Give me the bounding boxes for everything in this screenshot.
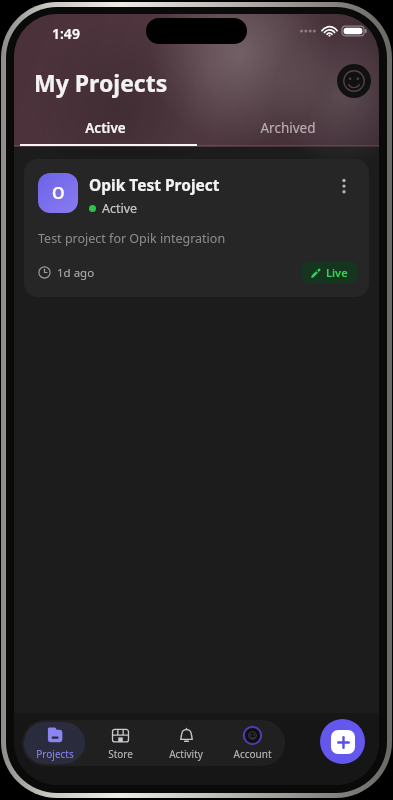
button[interactable]: Store — [89, 722, 151, 764]
staticText: 1d ago — [57, 265, 95, 281]
staticText: Active — [85, 119, 126, 137]
staticText: Projects — [36, 747, 74, 761]
button[interactable]: Profile — [337, 64, 371, 98]
button[interactable]: Live — [302, 261, 357, 284]
staticText: Live — [326, 265, 348, 280]
staticText: Account — [233, 747, 272, 761]
button[interactable]: More options — [331, 173, 357, 199]
button[interactable]: Add project — [320, 719, 365, 764]
button[interactable]: Activity — [155, 722, 217, 764]
button[interactable]: O — [24, 159, 369, 297]
staticText: Active — [102, 200, 138, 217]
button[interactable]: Archived — [196, 111, 379, 145]
staticText: Test project for Opik integration — [38, 230, 226, 247]
button[interactable]: Projects — [24, 722, 85, 764]
staticText: Archived — [260, 119, 316, 137]
staticText: 1:49 — [52, 24, 80, 43]
staticText: Opik Test Project — [89, 174, 220, 195]
button[interactable]: Account — [221, 722, 283, 764]
button[interactable]: Active — [14, 111, 196, 145]
staticText: Activity — [169, 747, 203, 761]
staticText: My Projects — [34, 67, 168, 98]
staticText: Store — [108, 747, 133, 761]
staticText: O — [52, 182, 65, 204]
